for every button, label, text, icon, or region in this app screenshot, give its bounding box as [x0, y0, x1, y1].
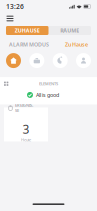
staticText: ALARM MODUS	[9, 41, 49, 48]
button[interactable]: Menu	[3, 13, 17, 24]
staticText: Zu Hause	[65, 41, 88, 48]
button[interactable]: Abwesend	[29, 53, 44, 68]
staticText: All is good	[36, 91, 59, 98]
staticText: ELEMENTS	[39, 81, 58, 86]
button[interactable]: Gast	[76, 53, 91, 68]
staticText: Heute	[21, 137, 31, 142]
button[interactable]: ZUHAUSE	[6, 26, 48, 35]
staticText: ZUHAUSE	[15, 27, 40, 34]
button[interactable]: Nacht	[53, 53, 68, 68]
button[interactable]: Zu Hause	[65, 41, 88, 48]
button[interactable]: Zu Hause	[6, 53, 21, 68]
staticText: RÄUME	[60, 27, 79, 34]
staticText: 13:26	[6, 2, 24, 11]
staticText: 3	[22, 121, 29, 137]
staticText: EREIGNISSE	[15, 102, 33, 113]
button[interactable]: RÄUME	[48, 26, 91, 35]
